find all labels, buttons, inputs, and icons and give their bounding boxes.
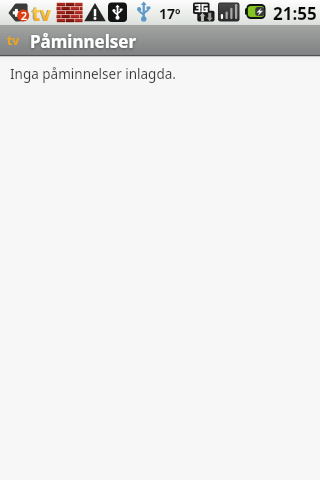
staticText: 2 [21,9,28,23]
button[interactable]: Påminnelser, app title bar [0,25,320,55]
staticText: 21:55 [273,2,317,25]
button[interactable]: Status bar [0,0,320,25]
button[interactable]: Inga påminnelser inlagda. [0,61,320,480]
staticText: 17º [159,4,181,23]
staticText: tv [7,32,20,48]
staticText: tv [31,1,51,26]
staticText: tv [32,1,52,26]
staticText: Påminnelser [30,30,136,53]
staticText: Inga påminnelser inlagda. [10,65,176,83]
